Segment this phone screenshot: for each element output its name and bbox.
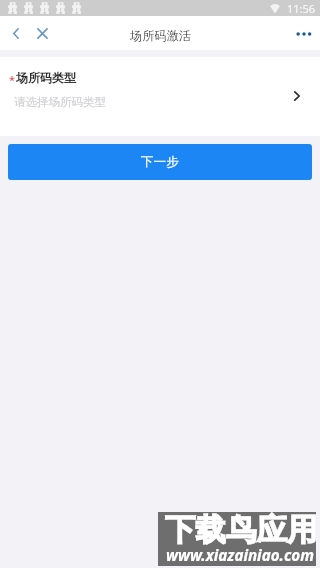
staticText: 11:56	[287, 1, 316, 16]
staticText: 下一步	[141, 154, 179, 170]
button[interactable]: Close	[30, 16, 55, 50]
staticText: *	[9, 72, 16, 87]
button[interactable]: 下一步	[8, 144, 312, 180]
staticText: 场所码激活	[130, 28, 191, 43]
staticText: 场所码类型	[16, 70, 76, 85]
button[interactable]: More options	[288, 16, 320, 50]
staticText: 下载鸟应用	[165, 511, 318, 549]
staticText: 请选择场所码类型	[14, 95, 106, 109]
staticText: www.xiazainiao.com	[166, 545, 314, 566]
button[interactable]: 请选择场所码类型	[0, 89, 320, 115]
button[interactable]: Back	[4, 16, 28, 50]
